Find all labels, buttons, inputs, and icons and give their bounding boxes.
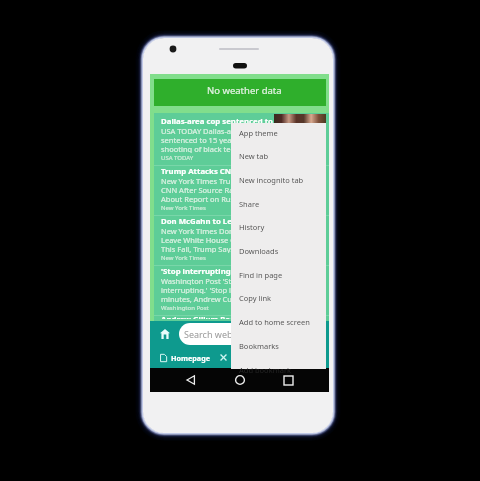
button[interactable]: History	[231, 215, 326, 239]
button[interactable]: Find in page	[231, 263, 326, 287]
button[interactable]: No weather data	[154, 79, 326, 106]
staticText: sentenced to 15 years in fatal	[161, 135, 265, 144]
staticText: New York Times Don McGahn to	[161, 226, 275, 235]
button[interactable]: Downloads	[231, 239, 326, 263]
staticText: History	[239, 222, 265, 232]
staticText: Add to home screen	[239, 317, 310, 327]
button[interactable]: Bookmarks	[231, 334, 326, 358]
button[interactable]: 'Stop interrupting.' 'Stop	[154, 266, 329, 315]
staticText: Washington Post	[161, 304, 209, 312]
button[interactable]: Search web	[179, 323, 324, 345]
staticText: Add bookmark	[239, 365, 291, 375]
staticText: USA TODAY Dallas-area cop	[161, 126, 258, 135]
staticText: Dallas-area cop sentenced to	[161, 116, 273, 126]
staticText: Downloads	[239, 246, 279, 256]
staticText: CNN After Source Raises Doubt	[161, 185, 271, 194]
staticText: Share	[239, 199, 260, 209]
button[interactable]: Back	[184, 373, 198, 387]
staticText: 'Stop interrupting.' 'Stop	[161, 266, 257, 276]
staticText: About Report on Russia	[161, 194, 244, 203]
button[interactable]: Add bookmark	[231, 358, 326, 382]
staticText: No weather data	[207, 84, 282, 97]
staticText: Search web	[184, 328, 233, 340]
staticText: New tab	[239, 151, 269, 161]
button[interactable]: New incognito tab	[231, 168, 326, 192]
staticText: New York Times Trump Attacks	[161, 176, 270, 185]
staticText: interrupting.' 'Stop lying.' In 10	[161, 285, 270, 294]
staticText: shooting of black teen	[161, 144, 240, 153]
staticText: New York Times	[161, 204, 206, 212]
button[interactable]: Share	[231, 192, 326, 216]
staticText: App theme	[239, 128, 278, 138]
staticText: Andrew Gillum Rode a	[161, 314, 247, 319]
button[interactable]: Don McGahn to Leave	[154, 216, 329, 265]
staticText: New incognito tab	[239, 175, 304, 185]
staticText: Trump Attacks CNN	[161, 166, 238, 176]
staticText: Homepage	[171, 353, 210, 363]
button[interactable]: App theme	[231, 121, 326, 145]
button[interactable]: Homepage	[150, 348, 329, 368]
staticText: minutes, Andrew Cuomo and	[161, 294, 264, 303]
button[interactable]: Recents	[281, 373, 295, 387]
button[interactable]: Close tab	[218, 352, 229, 363]
staticText: Don McGahn to Leave	[161, 216, 246, 226]
button[interactable]: New tab	[231, 144, 326, 168]
staticText: Copy link	[239, 293, 272, 303]
staticText: Leave White House Counsel Job	[161, 235, 272, 244]
button[interactable]: Copy link	[231, 286, 326, 310]
button[interactable]: Home	[160, 329, 170, 339]
staticText: Bookmarks	[239, 341, 279, 351]
staticText: Washington Post 'Stop	[161, 276, 241, 285]
staticText: USA TODAY	[161, 154, 194, 162]
button[interactable]: Andrew Gillum Rode a	[154, 316, 329, 321]
staticText: This Fall, Trump Says	[161, 244, 235, 253]
button[interactable]: Trump Attacks CNN	[154, 166, 329, 215]
button[interactable]: Home	[233, 373, 247, 387]
staticText: New York Times	[161, 254, 206, 262]
button[interactable]: Dallas-area cop sentenced to	[154, 116, 329, 165]
staticText: Find in page	[239, 270, 283, 280]
button[interactable]: Add to home screen	[231, 310, 326, 334]
